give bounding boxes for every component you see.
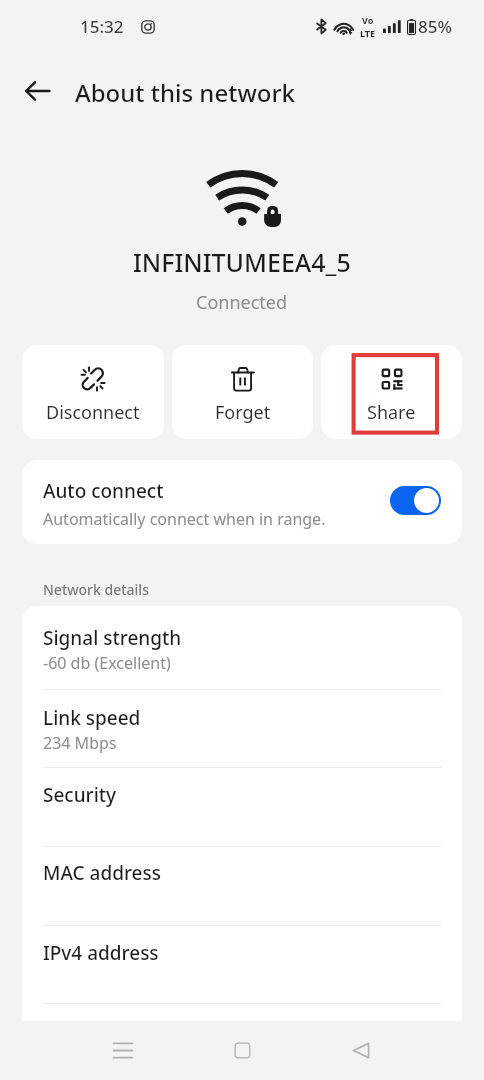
staticText: LTE: [360, 27, 376, 39]
button[interactable]: MAC address: [22, 847, 462, 925]
staticText: Link speed: [43, 705, 141, 731]
button[interactable]: Signal strength: [22, 606, 462, 689]
button[interactable]: Auto connect toggle: [390, 486, 441, 515]
staticText: 85%: [418, 15, 452, 38]
staticText: 15:32: [80, 15, 124, 38]
staticText: Connected: [196, 290, 288, 315]
button[interactable]: Recent apps: [93, 1021, 153, 1080]
button[interactable]: Forget: [172, 345, 313, 439]
staticText: Network details: [43, 580, 149, 599]
button[interactable]: Back: [331, 1021, 391, 1080]
staticText: Share: [367, 400, 416, 425]
button[interactable]: Disconnect: [22, 345, 164, 439]
staticText: -60 db (Excellent): [43, 652, 171, 674]
button[interactable]: Auto connect: [22, 460, 462, 544]
staticText: Security: [43, 782, 117, 808]
button[interactable]: Share: [321, 345, 462, 439]
staticText: Automatically connect when in range.: [43, 508, 326, 530]
staticText: Signal strength: [43, 625, 182, 651]
staticText: Disconnect: [46, 400, 140, 425]
staticText: Auto connect: [43, 478, 164, 504]
button[interactable]: IPv4 address: [22, 926, 462, 1003]
staticText: Forget: [215, 400, 271, 425]
staticText: 234 Mbps: [43, 732, 117, 754]
button[interactable]: Security: [22, 768, 462, 846]
staticText: Vo: [362, 14, 374, 26]
staticText: INFINITUMEEA4_5: [133, 245, 351, 279]
button[interactable]: Back: [13, 67, 61, 115]
staticText: MAC address: [43, 860, 161, 886]
button[interactable]: Link speed: [22, 690, 462, 767]
button[interactable]: Home: [212, 1021, 272, 1080]
staticText: About this network: [75, 76, 295, 109]
staticText: IPv4 address: [43, 940, 159, 966]
